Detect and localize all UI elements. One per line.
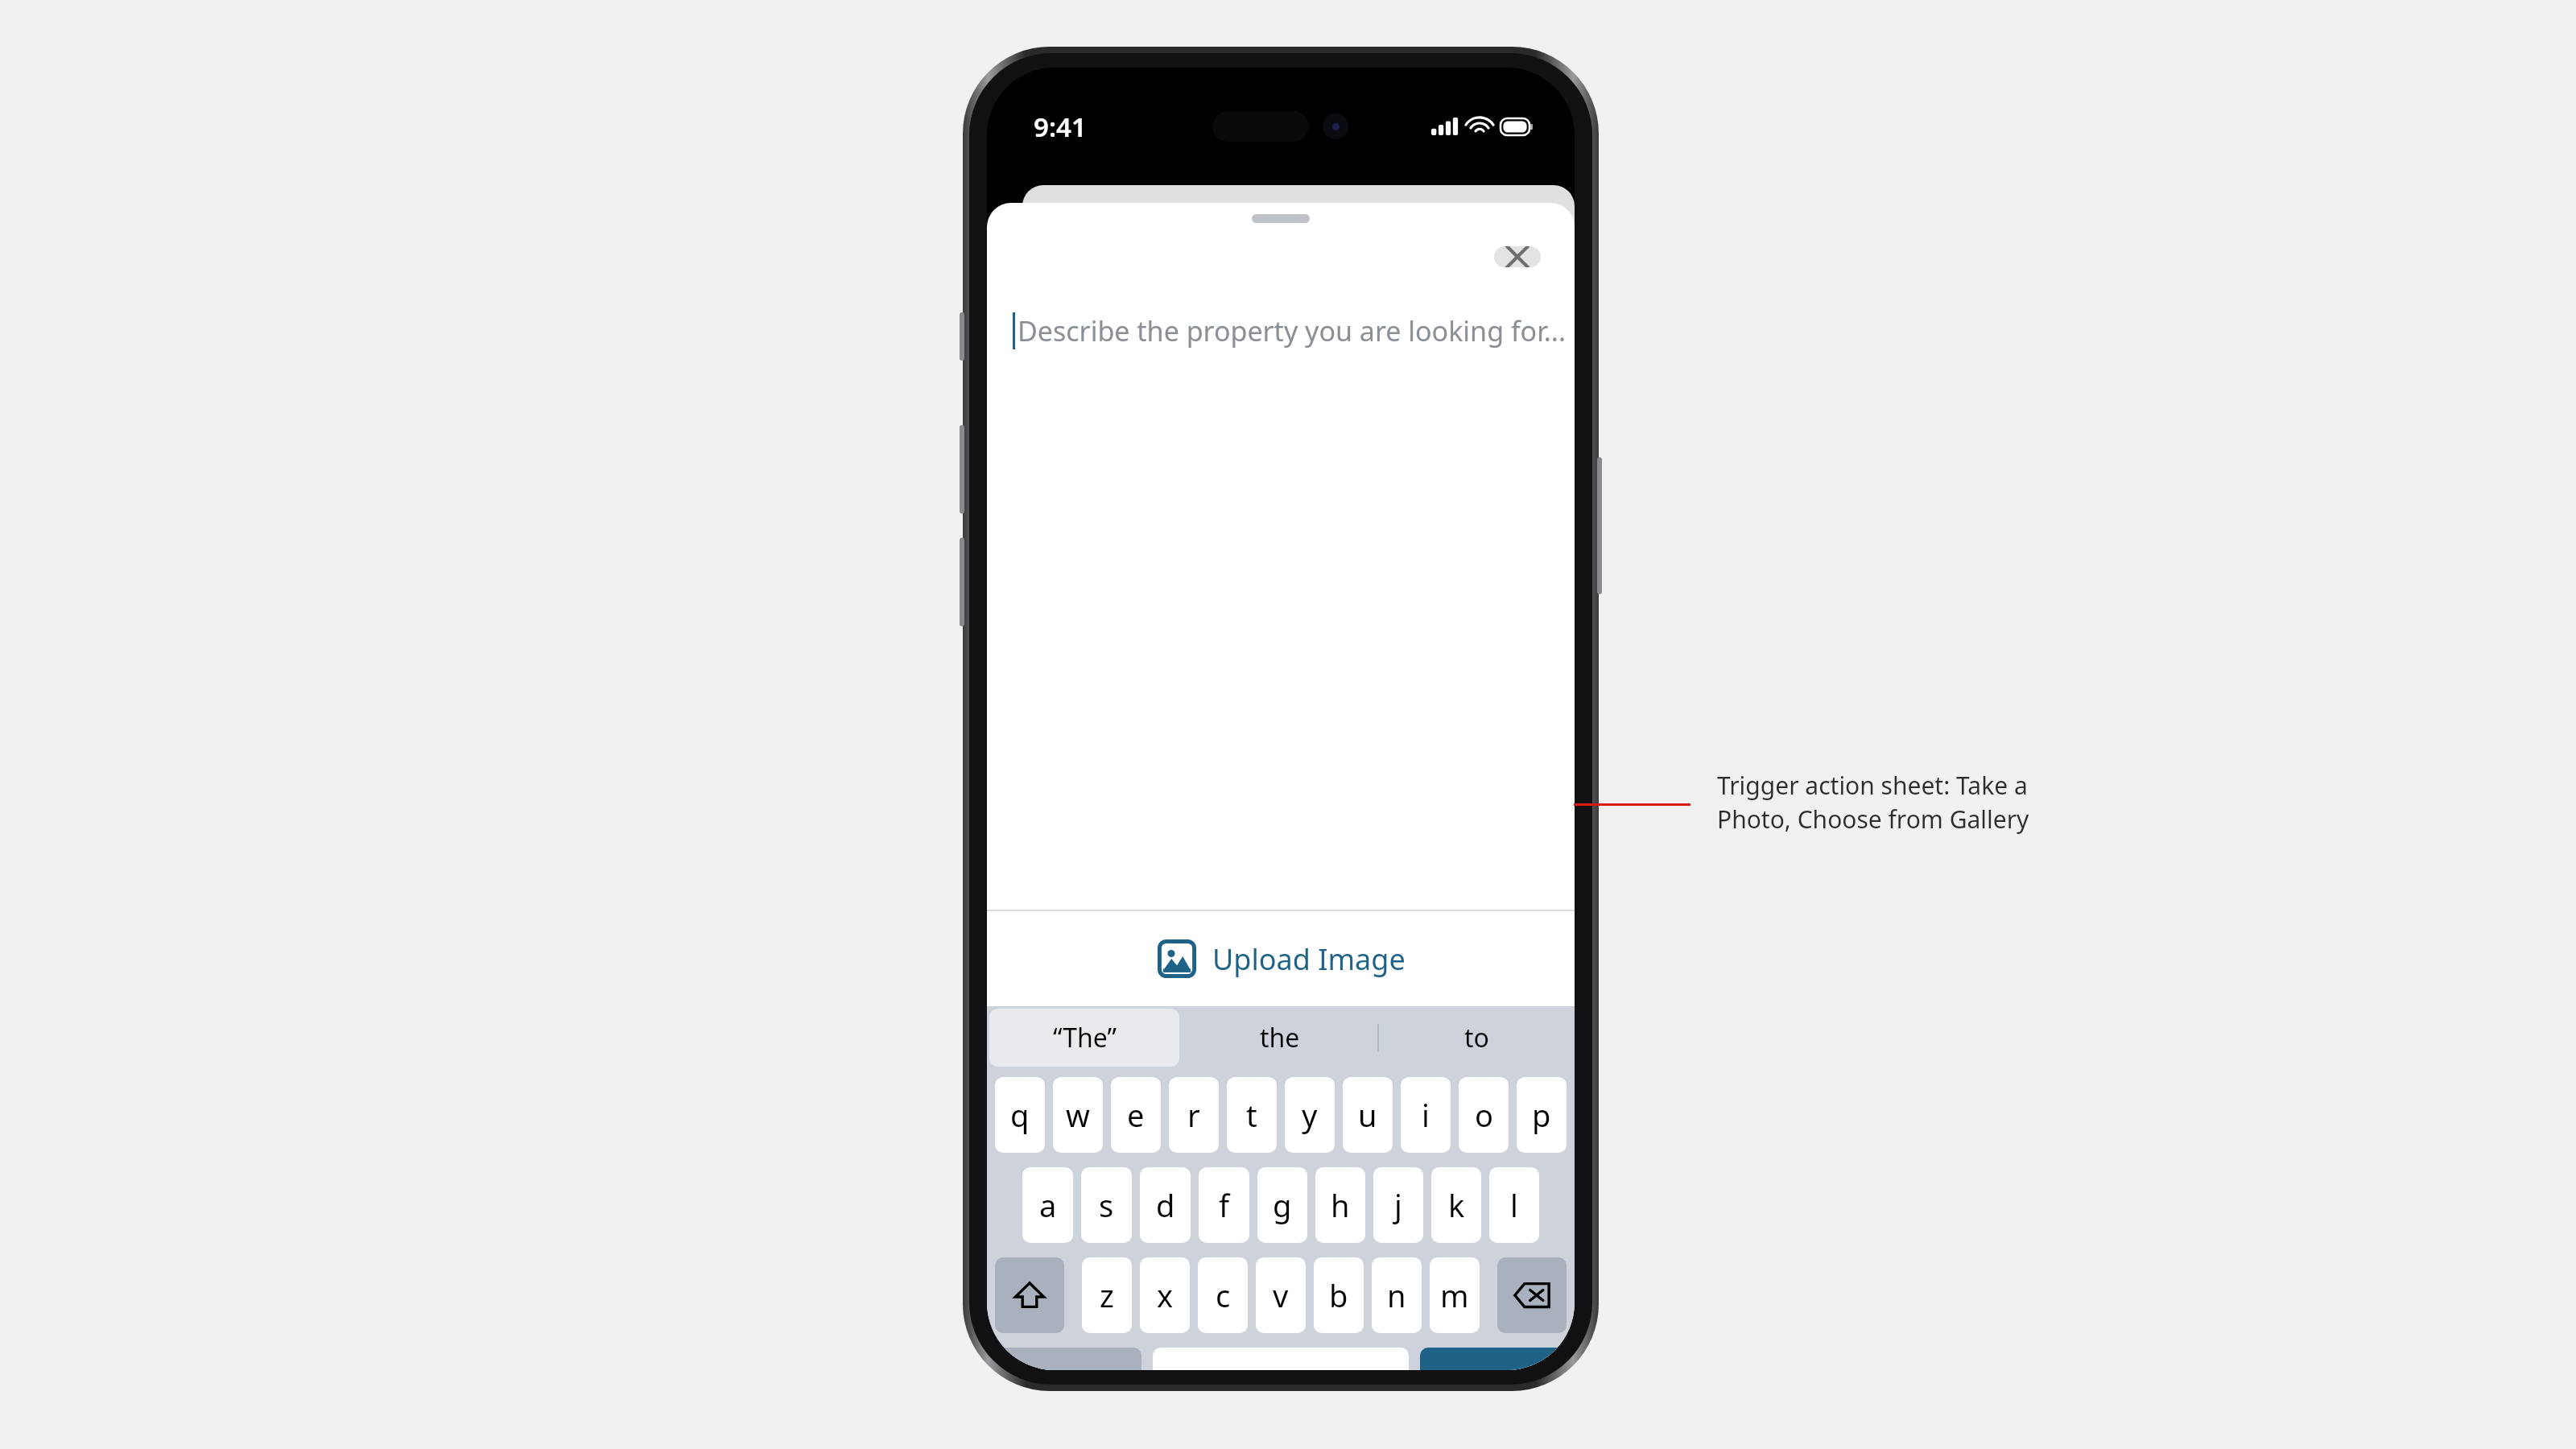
staticText: s — [1099, 1184, 1114, 1226]
staticText: m — [1440, 1274, 1469, 1316]
staticText: a — [1039, 1184, 1057, 1226]
button[interactable]: the — [1182, 1006, 1377, 1069]
staticText: c — [1216, 1274, 1231, 1316]
staticText: n — [1387, 1274, 1406, 1316]
staticText: search — [1453, 1369, 1534, 1370]
button[interactable]: Backspace — [1497, 1257, 1567, 1333]
button[interactable]: i — [1401, 1077, 1451, 1153]
staticText: p — [1532, 1094, 1551, 1136]
button[interactable]: b — [1314, 1257, 1364, 1333]
button[interactable]: x — [1140, 1257, 1190, 1333]
staticText: to — [1464, 1020, 1489, 1055]
staticText: Upload Image — [1212, 939, 1406, 979]
staticText: e — [1127, 1094, 1145, 1136]
button[interactable]: m — [1430, 1257, 1480, 1333]
button[interactable]: n — [1372, 1257, 1422, 1333]
staticText: i — [1422, 1094, 1430, 1136]
staticText: o — [1475, 1094, 1493, 1136]
staticText: d — [1156, 1184, 1175, 1226]
button[interactable]: j — [1373, 1167, 1423, 1243]
staticText: t — [1246, 1094, 1257, 1136]
button[interactable]: search — [1420, 1348, 1567, 1370]
staticText: u — [1358, 1094, 1377, 1136]
button[interactable]: q — [995, 1077, 1045, 1153]
staticText: w — [1066, 1094, 1090, 1136]
staticText: the — [1260, 1020, 1300, 1055]
staticText: h — [1331, 1184, 1350, 1226]
staticText: Trigger action sheet: Take a Photo, Choo… — [1717, 769, 2029, 836]
staticText: y — [1302, 1094, 1318, 1136]
staticText: 9:41 — [1034, 109, 1087, 145]
staticText: Describe the property you are looking fo… — [1018, 312, 1567, 349]
staticText: b — [1329, 1274, 1348, 1316]
button[interactable]: y — [1285, 1077, 1335, 1153]
staticText: f — [1219, 1184, 1230, 1226]
button[interactable]: u — [1343, 1077, 1393, 1153]
button[interactable]: Close — [1494, 246, 1541, 267]
button[interactable]: k — [1431, 1167, 1481, 1243]
button[interactable]: p — [1517, 1077, 1567, 1153]
button[interactable]: Describe the property you are looking fo… — [987, 251, 1575, 910]
button[interactable]: e — [1111, 1077, 1161, 1153]
button[interactable]: c — [1198, 1257, 1248, 1333]
button[interactable]: a — [1022, 1167, 1073, 1243]
staticText: r — [1187, 1094, 1200, 1136]
button[interactable]: g — [1257, 1167, 1307, 1243]
staticText: “The” — [1053, 1020, 1117, 1055]
button[interactable]: f — [1199, 1167, 1249, 1243]
staticText: x — [1157, 1274, 1174, 1316]
button[interactable]: t — [1227, 1077, 1277, 1153]
staticText: l — [1510, 1184, 1518, 1226]
staticText: g — [1273, 1184, 1292, 1226]
button[interactable]: o — [1459, 1077, 1509, 1153]
staticText: q — [1010, 1094, 1030, 1136]
button[interactable]: Shift — [995, 1257, 1064, 1333]
button[interactable]: ABC — [995, 1348, 1141, 1370]
staticText: j — [1394, 1184, 1402, 1226]
button[interactable]: space — [1153, 1348, 1409, 1370]
button[interactable]: “The” — [989, 1009, 1179, 1067]
button[interactable]: Upload Image — [987, 911, 1575, 1006]
button[interactable]: l — [1489, 1167, 1539, 1243]
button[interactable]: r — [1169, 1077, 1219, 1153]
staticText: v — [1273, 1274, 1289, 1316]
button[interactable]: z — [1082, 1257, 1132, 1333]
staticText: k — [1448, 1184, 1465, 1226]
staticText: z — [1100, 1274, 1114, 1316]
button[interactable]: to — [1379, 1006, 1575, 1069]
button[interactable]: h — [1315, 1167, 1365, 1243]
button[interactable]: w — [1053, 1077, 1103, 1153]
button[interactable]: d — [1140, 1167, 1191, 1243]
button[interactable]: v — [1256, 1257, 1306, 1333]
button[interactable]: s — [1081, 1167, 1132, 1243]
